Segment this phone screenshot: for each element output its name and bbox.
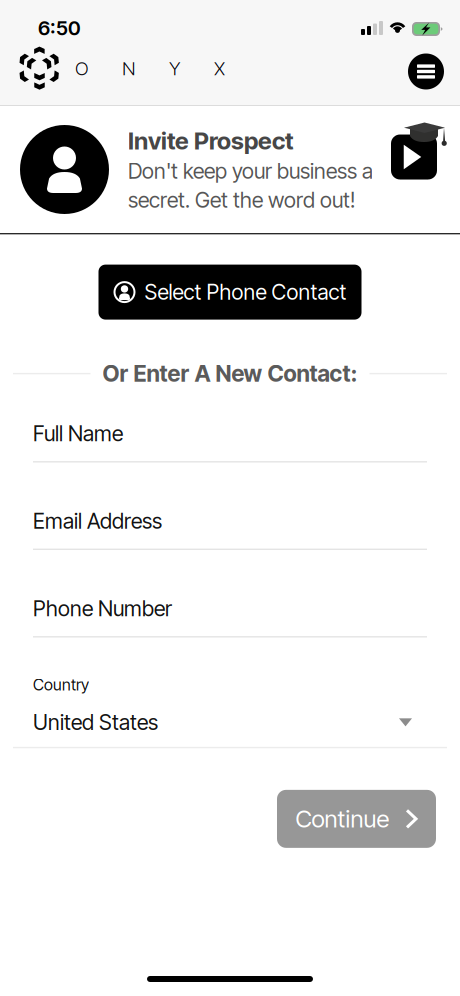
button[interactable]: Email Address (33, 508, 427, 550)
staticText: United States (33, 709, 158, 735)
button[interactable]: Country (33, 675, 427, 734)
staticText: Country (33, 675, 89, 694)
staticText: Continue (295, 804, 389, 833)
button[interactable]: Select Phone Contact (98, 265, 361, 320)
staticText: Select Phone Contact (144, 279, 346, 305)
staticText: Don't keep your business a (128, 158, 373, 184)
staticText: ONYX (75, 57, 225, 80)
button[interactable]: Full Name (33, 421, 427, 462)
staticText: Email Address (33, 508, 162, 534)
staticText: secret. Get the word out! (128, 187, 355, 213)
button[interactable]: Continue (277, 790, 436, 848)
button[interactable]: Invite Prospect (0, 106, 460, 233)
staticText: Phone Number (33, 596, 172, 621)
staticText: 6:50 (38, 16, 81, 40)
button[interactable]: Phone Number (33, 596, 427, 637)
button[interactable]: Menu (400, 45, 452, 97)
staticText: Invite Prospect (128, 126, 294, 155)
staticText: Or Enter A New Contact: (102, 360, 357, 387)
staticText: Full Name (33, 421, 123, 446)
